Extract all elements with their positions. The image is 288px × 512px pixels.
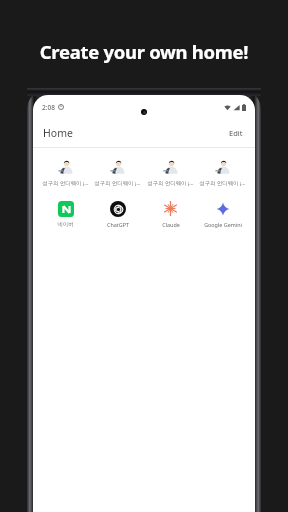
staticText: Create your own home!: [0, 39, 288, 64]
staticText: 2:08: [42, 103, 55, 112]
staticText: 성구의 언디웨이 ¡…: [42, 179, 89, 186]
button[interactable]: Home: [43, 126, 73, 140]
button[interactable]: 네이버: [40, 198, 91, 229]
staticText: 네이버: [57, 221, 74, 228]
staticText: Google Gemini: [204, 221, 242, 228]
button[interactable]: 성구의 언디웨이 ¡…: [40, 156, 91, 187]
staticText: 성구의 언디웨이 ¡…: [94, 179, 141, 186]
staticText: Edit: [229, 128, 243, 138]
button[interactable]: Edit: [227, 126, 245, 140]
staticText: ChatGPT: [107, 221, 129, 228]
button[interactable]: Google Gemini: [197, 198, 248, 229]
button[interactable]: Claude: [145, 198, 196, 229]
button[interactable]: 성구의 언디웨이 ¡…: [197, 156, 248, 187]
button[interactable]: 성구의 언디웨이 ¡…: [145, 156, 196, 187]
staticText: Claude: [162, 221, 180, 228]
staticText: 성구의 언디웨이 ¡…: [147, 179, 194, 186]
button[interactable]: 성구의 언디웨이 ¡…: [92, 156, 143, 187]
button[interactable]: ChatGPT: [92, 198, 143, 229]
staticText: 성구의 언디웨이 ¡…: [199, 179, 246, 186]
